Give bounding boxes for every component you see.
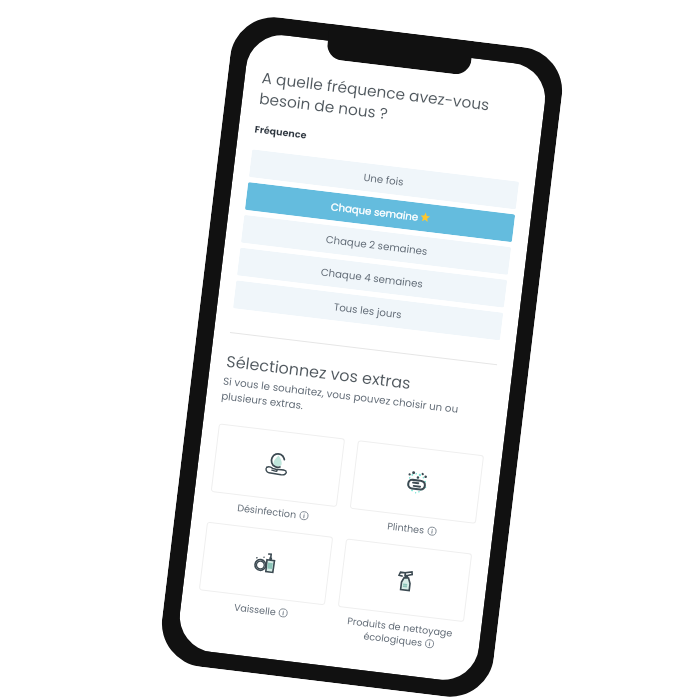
button[interactable]: Produits de nettoyage écologiques [338,538,472,622]
button[interactable]: Désinfection [211,423,345,507]
staticText: écologiques [363,629,423,649]
staticText: Chaque 4 semaines [320,264,424,291]
staticText: Chaque semaine [330,199,420,224]
staticText: Sélectionnez vos extras [225,350,412,394]
staticText: A quelle fréquence avez-vous besoin de n… [258,67,513,139]
staticText: Chaque 2 semaines [325,232,428,258]
button[interactable]: Tous les jours [233,280,503,340]
button[interactable]: Chaque 2 semaines [241,215,511,275]
staticText: Fréquence [254,122,308,142]
button[interactable]: Plinthes [350,440,484,524]
staticText: Tous les jours [333,299,403,321]
button[interactable]: Une fois [249,149,519,209]
staticText: Vaisselle [233,600,277,618]
staticText: Plinthes [386,519,425,537]
staticText: Désinfection [236,501,297,521]
staticText: Si vous le souhaitez, vous pouvez choisi… [220,373,484,434]
button[interactable]: Chaque semaine [245,182,515,242]
button[interactable]: Chaque 4 semaines [237,248,507,308]
staticText: Produits de nettoyage [346,614,453,640]
staticText: Une fois [363,170,405,189]
button[interactable]: Vaisselle [199,522,333,605]
